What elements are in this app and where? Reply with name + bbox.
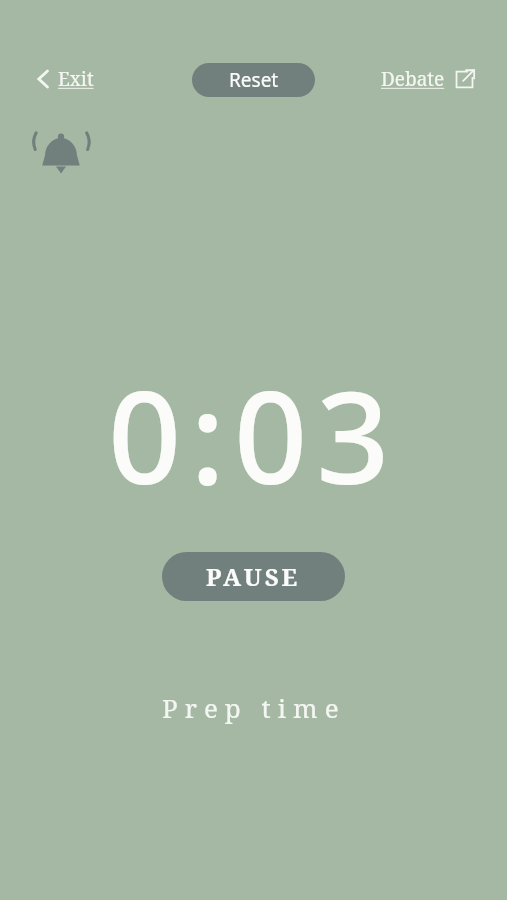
staticText: PAUSE (206, 560, 301, 593)
button[interactable]: Alarm bell (28, 118, 94, 182)
button[interactable]: Reset (192, 63, 315, 97)
staticText: Prep time (162, 690, 346, 725)
staticText: 0:03 (108, 347, 399, 487)
staticText: Debate (381, 66, 445, 92)
staticText: Exit (58, 66, 94, 92)
button[interactable]: Exit (30, 62, 100, 96)
button[interactable]: Debate (377, 62, 479, 96)
staticText: Reset (229, 67, 279, 93)
button[interactable]: PAUSE (162, 552, 345, 601)
